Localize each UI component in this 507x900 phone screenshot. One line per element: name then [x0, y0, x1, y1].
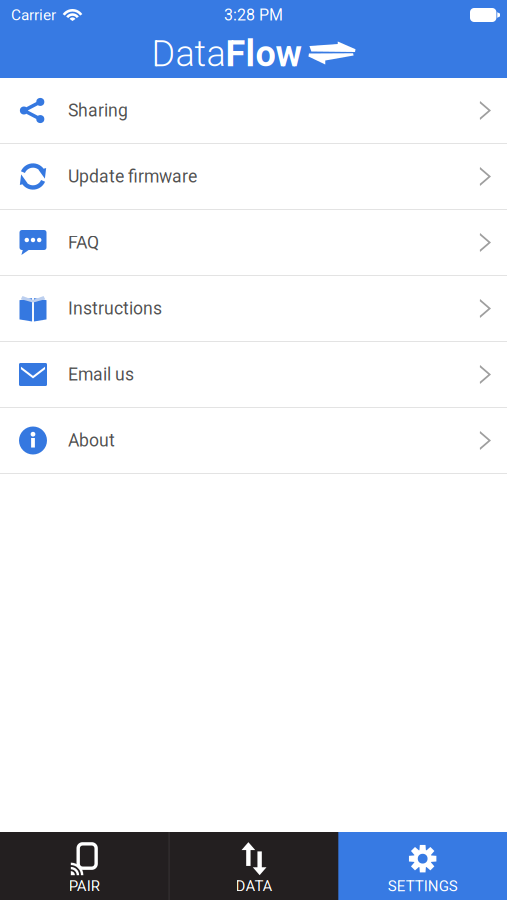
button[interactable]: DATA [170, 832, 338, 900]
staticText: Update firmware [68, 166, 197, 187]
button[interactable]: About [0, 408, 507, 474]
staticText: 3:28 PM [224, 6, 283, 24]
staticText: DATA [235, 877, 272, 895]
staticText: Sharing [68, 100, 128, 121]
staticText: PAIR [69, 877, 100, 895]
button[interactable]: Instructions [0, 276, 507, 342]
button[interactable]: Email us [0, 342, 507, 408]
staticText: About [68, 430, 115, 451]
button[interactable]: Sharing [0, 78, 507, 144]
staticText: Flow [225, 33, 301, 75]
staticText: Instructions [68, 298, 162, 319]
staticText: Data [151, 33, 225, 75]
button[interactable]: PAIR [0, 832, 169, 900]
staticText: Email us [68, 364, 134, 385]
staticText: SETTINGS [388, 877, 458, 895]
staticText: FAQ [68, 232, 99, 253]
button[interactable]: FAQ [0, 210, 507, 276]
button[interactable]: Update firmware [0, 144, 507, 210]
staticText: Carrier [11, 6, 56, 24]
button[interactable]: SETTINGS [338, 832, 507, 900]
